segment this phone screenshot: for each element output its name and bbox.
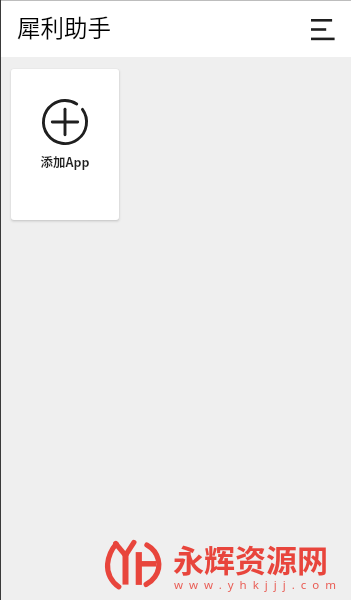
staticText: 永辉资源网 [173,536,328,581]
staticText: 添加App [40,152,90,170]
button[interactable]: 添加App [11,69,119,220]
staticText: www.yhkjjj.com [174,577,343,593]
staticText: 犀利助手 [17,10,111,44]
button[interactable]: Menu [301,7,345,51]
